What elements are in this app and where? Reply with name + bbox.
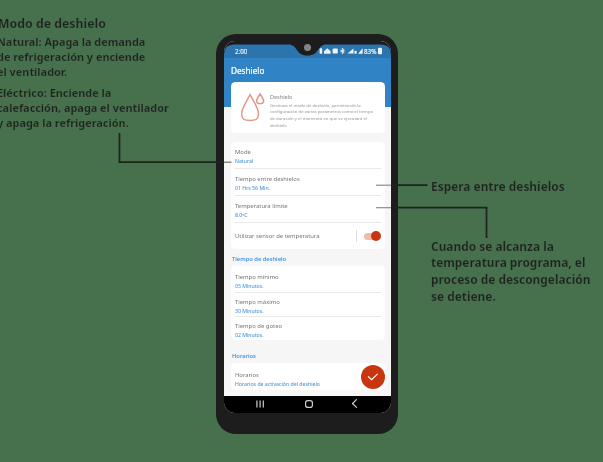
staticText: 83% bbox=[364, 47, 377, 55]
staticText: 01 Hrs 56 Min. bbox=[235, 184, 271, 191]
staticText: Tiempo de deshielo bbox=[232, 255, 287, 263]
staticText: Eléctrico: Enciende la calefacción, apag… bbox=[0, 85, 202, 130]
staticText: 2:00 bbox=[235, 47, 248, 55]
staticText: Mode bbox=[235, 148, 251, 156]
button[interactable]: Confirmar bbox=[361, 365, 385, 389]
staticText: Horarios de activación del deshielo bbox=[235, 380, 320, 387]
staticText: Natural: Apaga la demanda de refrigeraci… bbox=[0, 34, 197, 79]
button[interactable]: Utilizar sensor de temperatura bbox=[231, 223, 385, 249]
staticText: Gestiona el modo de deshielo, permitiend… bbox=[270, 102, 374, 129]
button[interactable]: Horarios bbox=[231, 363, 385, 390]
staticText: 8.0ºC bbox=[235, 211, 248, 218]
staticText: Natural bbox=[235, 157, 254, 164]
staticText: Deshielo bbox=[270, 93, 293, 100]
button[interactable]: Tiempo máximo bbox=[231, 293, 385, 316]
staticText: Espera entre deshielos bbox=[431, 178, 565, 194]
button[interactable]: Atrás bbox=[345, 395, 364, 412]
staticText: Tiempo entre deshielos bbox=[235, 175, 300, 183]
staticText: Tiempo mínimo bbox=[235, 273, 279, 281]
button[interactable]: Temperatura límite bbox=[231, 196, 385, 222]
staticText: Tiempo de goteo bbox=[235, 322, 283, 330]
button[interactable]: Tiempo entre deshielos bbox=[231, 169, 385, 195]
button[interactable]: Tiempo mínimo bbox=[231, 266, 385, 292]
staticText: 05 Minutos. bbox=[235, 282, 264, 289]
staticText: Deshielo bbox=[231, 65, 265, 76]
button[interactable]: Mode bbox=[231, 142, 385, 168]
staticText: Tiempo máximo bbox=[235, 298, 280, 306]
staticText: Modo de deshielo bbox=[0, 15, 106, 32]
button[interactable]: Recientes bbox=[250, 395, 269, 412]
staticText: Cuando se alcanza la temperatura program… bbox=[431, 238, 603, 305]
button[interactable]: Inicio bbox=[299, 395, 318, 412]
staticText: 02 Minutos. bbox=[235, 331, 264, 338]
staticText: Horarios bbox=[235, 371, 259, 379]
staticText: 30 Minutos. bbox=[235, 307, 264, 314]
button[interactable]: Tiempo de goteo bbox=[231, 317, 385, 340]
staticText: Temperatura límite bbox=[235, 202, 288, 210]
staticText: Horarios bbox=[232, 352, 256, 360]
staticText: Utilizar sensor de temperatura bbox=[235, 232, 320, 240]
button[interactable]: Deshielo bbox=[231, 82, 385, 133]
